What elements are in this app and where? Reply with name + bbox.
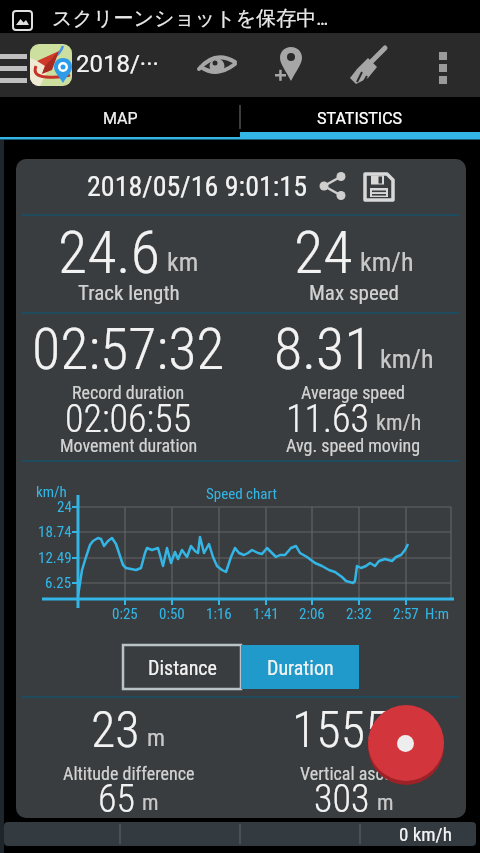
staticText: 303 [314, 777, 370, 818]
staticText: 24.6 [58, 217, 160, 287]
staticText: H:m [425, 605, 450, 623]
staticText: 23 [91, 701, 140, 760]
button[interactable]: Distance [123, 645, 241, 689]
staticText: 2018/··· [76, 50, 159, 78]
staticText: 02:57:32 [32, 315, 225, 383]
staticText: km/h [36, 483, 67, 501]
staticText: 24 [57, 498, 72, 516]
staticText: 12.49 [38, 549, 72, 567]
staticText: 2:32 [346, 605, 372, 623]
staticText: 18.74 [38, 523, 72, 541]
button[interactable] [272, 47, 308, 85]
staticText: m [377, 790, 394, 816]
staticText: Distance [148, 656, 217, 679]
staticText: Vertical ascent [300, 763, 407, 784]
staticText: Average speed [301, 382, 406, 403]
staticText: 1:16 [206, 605, 232, 623]
staticText: Track length [78, 281, 180, 306]
button[interactable] [198, 48, 238, 82]
staticText: 02:06:55 [65, 397, 192, 442]
staticText: 0:50 [159, 605, 185, 623]
staticText: 2:57 [393, 605, 419, 623]
staticText: Movement duration [60, 435, 198, 456]
staticText: Max speed [309, 281, 399, 306]
staticText: 0:25 [112, 605, 138, 623]
button[interactable] [0, 33, 30, 97]
staticText: 1:41 [253, 605, 279, 623]
button[interactable]: STATISTICS [240, 97, 480, 140]
button[interactable] [348, 45, 390, 87]
staticText: 1555 [292, 701, 390, 760]
staticText: km/h [360, 247, 414, 277]
staticText: m [142, 790, 159, 816]
staticText: Record duration [72, 382, 185, 403]
staticText: MAP [103, 109, 138, 128]
staticText: STATISTICS [317, 109, 403, 128]
staticText: Duration [267, 656, 334, 679]
staticText: 65 [98, 777, 135, 818]
staticText: 11.63 [286, 397, 369, 442]
button[interactable] [363, 170, 395, 202]
button[interactable]: MAP [0, 97, 240, 140]
staticText: 2:06 [299, 605, 325, 623]
button[interactable] [367, 705, 445, 783]
staticText: 6.25 [45, 574, 72, 592]
staticText: Avg. speed moving [286, 435, 421, 456]
staticText: km/h [376, 410, 422, 436]
staticText: 24 [294, 217, 353, 287]
staticText: km [167, 247, 199, 277]
staticText: スクリーンショットを保存中… [52, 6, 329, 31]
button[interactable]: Duration [241, 645, 359, 689]
staticText: Altitude difference [63, 763, 195, 784]
staticText: km/h [380, 344, 434, 374]
button[interactable] [430, 45, 458, 87]
button[interactable] [319, 172, 347, 200]
staticText: 0 km/h [399, 823, 452, 845]
staticText: 2018/05/16 9:01:15 [87, 170, 307, 203]
staticText: 8.31 [274, 315, 373, 383]
staticText: Speed chart [206, 485, 277, 503]
staticText: m [147, 724, 166, 752]
staticText: m [397, 724, 416, 752]
